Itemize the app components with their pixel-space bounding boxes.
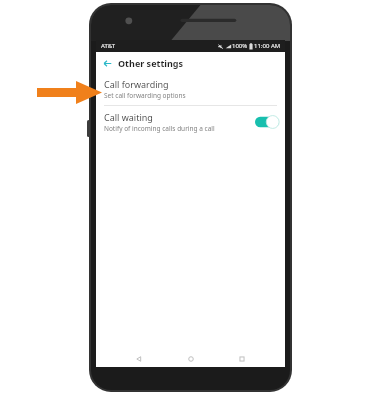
staticText: Set call forwarding options xyxy=(104,91,186,100)
button[interactable]: Back xyxy=(131,351,147,367)
staticText: 11:00 AM xyxy=(254,42,281,50)
button[interactable]: Call waiting toggle xyxy=(255,115,279,129)
staticText: 100% xyxy=(232,42,248,50)
button[interactable]: Recent apps xyxy=(234,351,250,367)
button[interactable]: Call waiting xyxy=(96,106,285,138)
button[interactable]: Call forwarding xyxy=(96,73,285,105)
staticText: Other settings xyxy=(118,57,184,69)
staticText: Call waiting xyxy=(104,111,153,123)
staticText: Call forwarding xyxy=(104,78,169,90)
button[interactable]: Back xyxy=(100,56,114,70)
button[interactable]: Home xyxy=(183,351,199,367)
staticText: Notify of incoming calls during a call xyxy=(104,124,215,133)
staticText: AT&T xyxy=(101,42,115,50)
